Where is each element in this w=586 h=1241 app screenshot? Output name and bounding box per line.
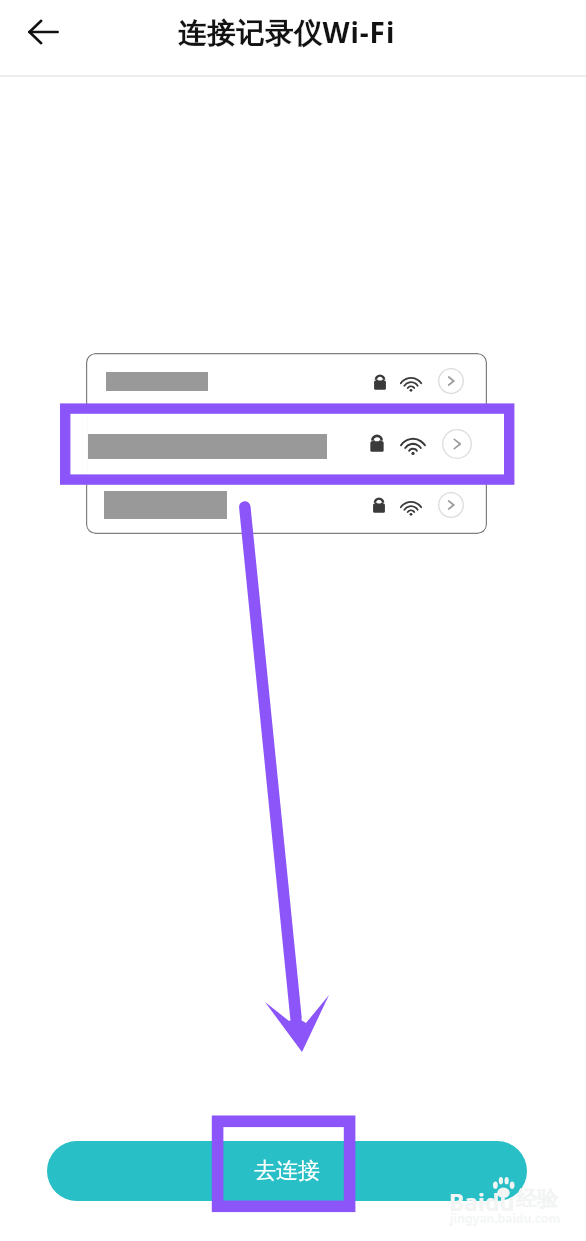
button[interactable]: Open network details bbox=[442, 429, 472, 459]
staticText: jingyan.baidu.com bbox=[450, 1210, 561, 1226]
staticText: 去连接 bbox=[254, 1157, 320, 1185]
button[interactable]: 去连接 bbox=[47, 1141, 527, 1201]
staticText: 连接记录仪Wi-Fi bbox=[178, 13, 396, 51]
button[interactable]: Open network details bbox=[438, 368, 464, 394]
button[interactable]: Back bbox=[15, 4, 71, 60]
button[interactable]: Secured Wi-Fi network 1 bbox=[86, 353, 487, 410]
button[interactable]: Open network details bbox=[438, 492, 464, 518]
button[interactable]: Secured Wi-Fi network 3 bbox=[86, 473, 487, 534]
button[interactable]: Secured Wi-Fi network 2, selected bbox=[86, 410, 487, 473]
staticText: Baidu bbox=[449, 1186, 515, 1217]
staticText: 经验 bbox=[516, 1186, 558, 1212]
